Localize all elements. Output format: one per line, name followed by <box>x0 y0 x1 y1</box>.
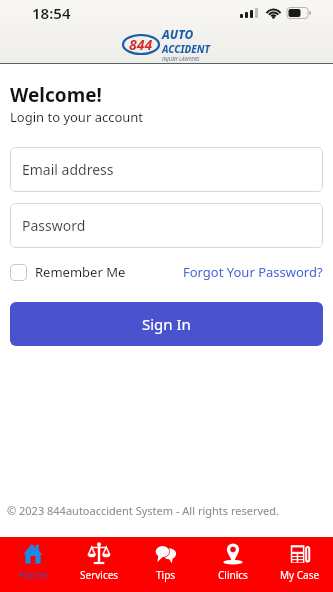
button[interactable]: Email address <box>10 147 323 192</box>
button[interactable]: Home <box>0 537 66 592</box>
button[interactable]: Forgot Your Password? <box>183 263 323 281</box>
staticText: My Case <box>280 568 320 582</box>
button[interactable]: Clinics <box>199 537 266 592</box>
staticText: ACCIDENT <box>162 42 211 56</box>
button[interactable]: Sign In <box>10 302 323 346</box>
button[interactable]: Password <box>10 203 323 248</box>
staticText: Services <box>80 568 119 582</box>
staticText: © 2023 844autoaccident System - All righ… <box>7 503 279 518</box>
staticText: 18:54 <box>32 3 71 23</box>
staticText: Login to your account <box>10 108 144 126</box>
button[interactable]: My Case <box>266 537 333 592</box>
staticText: Tips <box>156 568 176 582</box>
staticText: AUTO <box>162 26 194 42</box>
staticText: Sign In <box>142 314 191 334</box>
staticText: Password <box>22 216 86 235</box>
staticText: Email address <box>22 160 114 179</box>
staticText: Remember Me <box>35 263 126 281</box>
staticText: Home <box>19 568 48 582</box>
button[interactable]: Remember Me <box>10 263 126 281</box>
staticText: INJURY LAWYERS <box>162 56 200 63</box>
button[interactable]: Tips <box>132 537 199 592</box>
staticText: Welcome! <box>10 82 102 108</box>
staticText: Clinics <box>218 568 248 582</box>
staticText: 844 <box>129 35 153 54</box>
button[interactable]: Services <box>66 537 132 592</box>
